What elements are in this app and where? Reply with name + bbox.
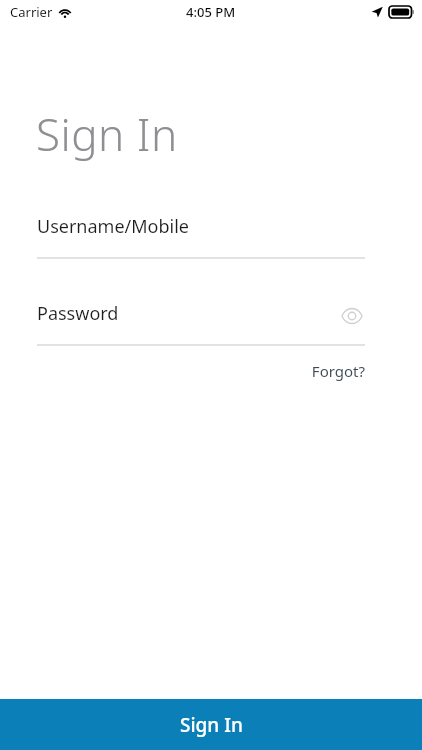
button[interactable]: Forgot?: [297, 358, 365, 384]
staticText: 4:05 PM: [186, 3, 236, 21]
staticText: Password: [37, 301, 119, 326]
staticText: Username/Mobile: [37, 214, 189, 239]
staticText: Sign In: [180, 712, 243, 738]
button[interactable]: Username/Mobile: [37, 214, 365, 259]
staticText: Sign In: [36, 104, 178, 164]
staticText: Forgot?: [311, 361, 365, 381]
button[interactable]: Password: [37, 301, 365, 346]
staticText: Carrier: [10, 3, 53, 21]
button[interactable]: Show password: [339, 303, 365, 329]
button[interactable]: Sign In: [0, 699, 422, 750]
